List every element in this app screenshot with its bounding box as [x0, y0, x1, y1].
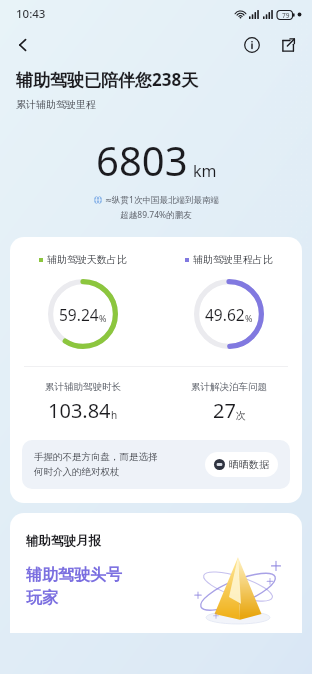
staticText: 累计辅助驾驶时长 — [45, 381, 121, 393]
staticText: 103.84 — [48, 397, 111, 424]
staticText: % — [99, 312, 107, 324]
button[interactable]: Info — [236, 29, 268, 61]
staticText: 辅助驾驶已陪伴您238天 — [16, 68, 199, 91]
staticText: 累计辅助驾驶里程 — [16, 98, 96, 111]
button[interactable]: Back — [6, 28, 40, 62]
button[interactable]: Share — [272, 29, 304, 61]
staticText: 辅助驾驶月报 — [26, 533, 101, 549]
staticText: 累计解决泊车问题 — [191, 381, 267, 393]
staticText: h — [111, 408, 118, 422]
staticText: 次 — [236, 409, 246, 422]
staticText: 59.24 — [59, 304, 99, 325]
staticText: 辅助驾驶头号 — [26, 565, 122, 585]
staticText: 10:43 — [16, 6, 46, 22]
button[interactable]: 辅助驾驶月报 — [10, 513, 302, 633]
staticText: 晒晒数据 — [229, 458, 269, 471]
staticText: km — [193, 160, 217, 182]
staticText: 辅助驾驶里程占比 — [193, 253, 273, 266]
staticText: 49.62 — [205, 304, 245, 325]
staticText: 超越89.74%的鹏友 — [16, 209, 296, 221]
staticText: 辅助驾驶天数占比 — [47, 253, 127, 266]
staticText: 6803 — [96, 133, 188, 187]
button[interactable]: 晒晒数据 — [205, 452, 278, 477]
staticText: % — [245, 312, 253, 324]
staticText: 手握的不是方向盘，而是选择 — [34, 451, 158, 463]
staticText: ≈纵贯1次中国最北端到最南端 — [105, 194, 219, 206]
staticText: 何时介入的绝对权杖 — [34, 466, 120, 478]
staticText: 玩家 — [26, 588, 58, 608]
staticText: 27 — [213, 397, 236, 424]
staticText: 79 — [282, 11, 290, 20]
